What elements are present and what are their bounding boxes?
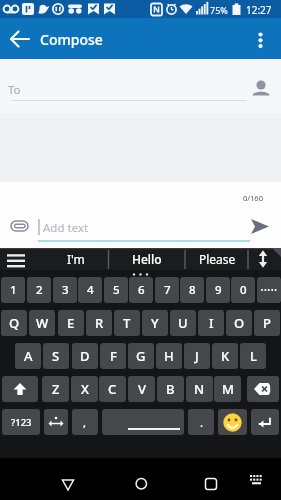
button[interactable] — [242, 466, 272, 492]
staticText: E — [67, 314, 75, 332]
staticText: F — [110, 347, 117, 365]
button[interactable]: , — [72, 409, 98, 435]
staticText: N — [194, 380, 205, 398]
staticText: ?123 — [11, 416, 32, 429]
staticText: D — [80, 347, 90, 365]
staticText: O — [234, 314, 245, 332]
staticText: 7 — [164, 282, 171, 298]
button[interactable]: R — [86, 310, 112, 336]
staticText: G — [136, 347, 146, 365]
button[interactable]: Z — [42, 376, 69, 402]
staticText: T — [123, 314, 131, 332]
button[interactable] — [4, 212, 36, 240]
button[interactable]: O — [226, 310, 252, 336]
button[interactable]: E — [58, 310, 84, 336]
button[interactable]: F — [100, 343, 126, 369]
button[interactable] — [251, 409, 279, 435]
staticText: W — [36, 314, 49, 332]
button[interactable] — [248, 22, 276, 56]
staticText: P — [263, 314, 271, 332]
button[interactable] — [218, 409, 247, 435]
button[interactable]: Please — [186, 248, 248, 270]
button[interactable]: 7 — [155, 277, 179, 303]
button[interactable] — [191, 462, 231, 496]
staticText: J — [195, 347, 199, 365]
button[interactable]: Hello — [109, 248, 185, 270]
button[interactable]: 6 — [129, 277, 153, 303]
button[interactable]: P — [254, 310, 280, 336]
button[interactable] — [102, 409, 184, 435]
staticText: I — [209, 314, 214, 332]
button[interactable]: A — [15, 343, 41, 369]
staticText: A — [24, 347, 33, 365]
staticText: 6 — [138, 282, 145, 298]
staticText: C — [108, 380, 117, 398]
button[interactable]: To — [0, 59, 281, 113]
staticText: X — [81, 380, 89, 398]
button[interactable]: 8 — [180, 277, 204, 303]
staticText: Please — [199, 251, 236, 267]
button[interactable]: C — [99, 376, 126, 402]
button[interactable]: 2 — [27, 277, 51, 303]
staticText: M — [222, 380, 234, 398]
staticText: Add text — [43, 220, 89, 236]
button[interactable] — [2, 22, 36, 56]
staticText: 12:27 — [246, 3, 272, 17]
button[interactable]: 9 — [206, 277, 230, 303]
button[interactable] — [244, 214, 276, 242]
button[interactable]: 0 — [231, 277, 255, 303]
button[interactable]: 4 — [78, 277, 102, 303]
button[interactable]: G — [128, 343, 154, 369]
staticText: 8 — [189, 282, 196, 298]
button[interactable] — [121, 462, 161, 496]
button[interactable]: L — [240, 343, 266, 369]
button[interactable]: Q — [1, 310, 27, 336]
staticText: K — [221, 347, 230, 365]
button[interactable]: I'm — [44, 248, 108, 270]
staticText: Z — [52, 380, 60, 398]
button[interactable]: 5 — [104, 277, 128, 303]
button[interactable]: M — [214, 376, 241, 402]
staticText: S — [52, 347, 60, 365]
button[interactable]: T — [114, 310, 140, 336]
staticText: U — [178, 314, 188, 332]
button[interactable]: H — [156, 343, 182, 369]
button[interactable]: 3 — [53, 277, 77, 303]
button[interactable]: K — [212, 343, 238, 369]
button[interactable]: 1 — [1, 277, 25, 303]
staticText: I'm — [67, 251, 85, 267]
button[interactable]: I — [198, 310, 224, 336]
staticText: 0 — [240, 282, 247, 298]
staticText: 0/160 — [243, 193, 263, 203]
staticText: B — [166, 380, 175, 398]
button[interactable]: . — [188, 409, 214, 435]
staticText: R — [95, 314, 104, 332]
staticText: L — [250, 347, 257, 365]
button[interactable] — [48, 462, 88, 496]
staticText: Hello — [132, 251, 162, 267]
button[interactable]: S — [43, 343, 69, 369]
staticText: Compose — [40, 30, 103, 49]
button[interactable]: X — [71, 376, 98, 402]
button[interactable]: ?123 — [2, 409, 40, 435]
staticText: 2 — [36, 282, 43, 298]
staticText: To — [8, 82, 21, 98]
button[interactable] — [44, 409, 68, 435]
button[interactable]: N — [186, 376, 213, 402]
button[interactable]: D — [72, 343, 98, 369]
button[interactable]: J — [184, 343, 210, 369]
button[interactable] — [246, 71, 278, 103]
staticText: 4 — [87, 282, 94, 298]
button[interactable] — [247, 376, 279, 402]
staticText: 5 — [113, 282, 120, 298]
button[interactable]: V — [128, 376, 155, 402]
button[interactable]: Y — [142, 310, 168, 336]
staticText: 9 — [215, 282, 222, 298]
button[interactable] — [2, 376, 38, 402]
button[interactable]: B — [157, 376, 184, 402]
button[interactable] — [257, 277, 281, 303]
button[interactable]: W — [29, 310, 55, 336]
staticText: 3 — [62, 282, 69, 298]
staticText: V — [138, 380, 146, 398]
button[interactable]: U — [170, 310, 196, 336]
